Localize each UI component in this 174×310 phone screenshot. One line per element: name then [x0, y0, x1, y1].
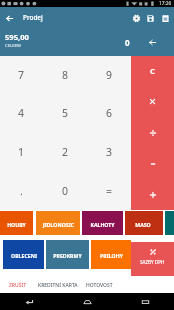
button[interactable]: Save: [143, 11, 157, 25]
staticText: 8: [62, 68, 69, 82]
button[interactable]: Clear: [131, 56, 174, 86]
button[interactable]: Minus: [131, 148, 174, 179]
button[interactable]: Plus: [131, 179, 174, 210]
staticText: =: [106, 184, 113, 198]
staticText: C: [150, 66, 155, 76]
staticText: PRILOHY: [100, 252, 123, 259]
staticText: 5: [62, 106, 69, 120]
button[interactable]: Multiply: [131, 86, 174, 117]
staticText: 1: [18, 145, 25, 159]
staticText: 3: [106, 145, 113, 159]
staticText: JIDLONOSIC: [43, 221, 74, 228]
button[interactable]: MASO: [125, 211, 163, 235]
button[interactable]: HOTOVOST: [86, 278, 113, 292]
button[interactable]: KREDITNÍ KARTA: [38, 278, 78, 292]
staticText: 9: [106, 68, 113, 82]
staticText: 4: [18, 106, 25, 120]
staticText: CELKEM: [5, 43, 21, 49]
button[interactable]: PRILOHY: [91, 240, 131, 269]
button[interactable]: Home: [58, 293, 116, 310]
staticText: 2: [62, 145, 69, 159]
button[interactable]: 0: [43, 171, 87, 210]
button[interactable]: HOUBY: [0, 211, 33, 235]
button[interactable]: 8: [43, 56, 87, 94]
staticText: HOUBY: [7, 221, 26, 228]
button[interactable]: 9: [87, 56, 131, 94]
button[interactable]: 3: [87, 132, 131, 171]
button[interactable]: 6: [87, 94, 131, 132]
staticText: Prodej: [23, 13, 43, 22]
button[interactable]: Back: [0, 293, 58, 310]
button[interactable]: .: [0, 171, 43, 210]
staticText: MASO: [135, 221, 151, 228]
staticText: SAZBY DPH: [140, 259, 165, 265]
staticText: 17:26: [159, 0, 172, 7]
button[interactable]: Divide: [131, 117, 174, 148]
staticText: 0: [125, 37, 130, 48]
staticText: KALHOTY: [90, 221, 115, 228]
staticText: 0: [62, 184, 69, 198]
staticText: ZRUŠIT: [9, 282, 27, 289]
button[interactable]: Recents: [116, 293, 174, 310]
button[interactable]: Backspace: [145, 35, 160, 50]
staticText: PREDKRMY: [53, 252, 82, 259]
button[interactable]: Settings: [129, 11, 143, 25]
button[interactable]: 7: [0, 56, 43, 94]
button[interactable]: 1: [0, 132, 43, 171]
button[interactable]: PREDKRMY: [46, 240, 89, 269]
button[interactable]: JIDLONOSIC: [36, 211, 80, 235]
button[interactable]: ZRUŠIT: [9, 278, 27, 292]
button[interactable]: 2: [43, 132, 87, 171]
staticText: 595,00: [5, 32, 29, 42]
button[interactable]: 4: [0, 94, 43, 132]
staticText: HOTOVOST: [86, 282, 113, 289]
button[interactable]: Back: [1, 10, 17, 26]
button[interactable]: 5: [43, 94, 87, 132]
button[interactable]: OBLECENI: [3, 240, 44, 269]
staticText: OBLECENI: [11, 252, 37, 259]
staticText: 7: [18, 68, 25, 82]
staticText: 6: [106, 106, 113, 120]
button[interactable]: KALHOTY: [82, 211, 123, 235]
staticText: KREDITNÍ KARTA: [38, 282, 78, 289]
button[interactable]: =: [87, 171, 131, 210]
staticText: .: [20, 184, 23, 198]
button[interactable]: SAZBY DPH: [131, 242, 174, 276]
button[interactable]: Receipts: [158, 11, 172, 25]
